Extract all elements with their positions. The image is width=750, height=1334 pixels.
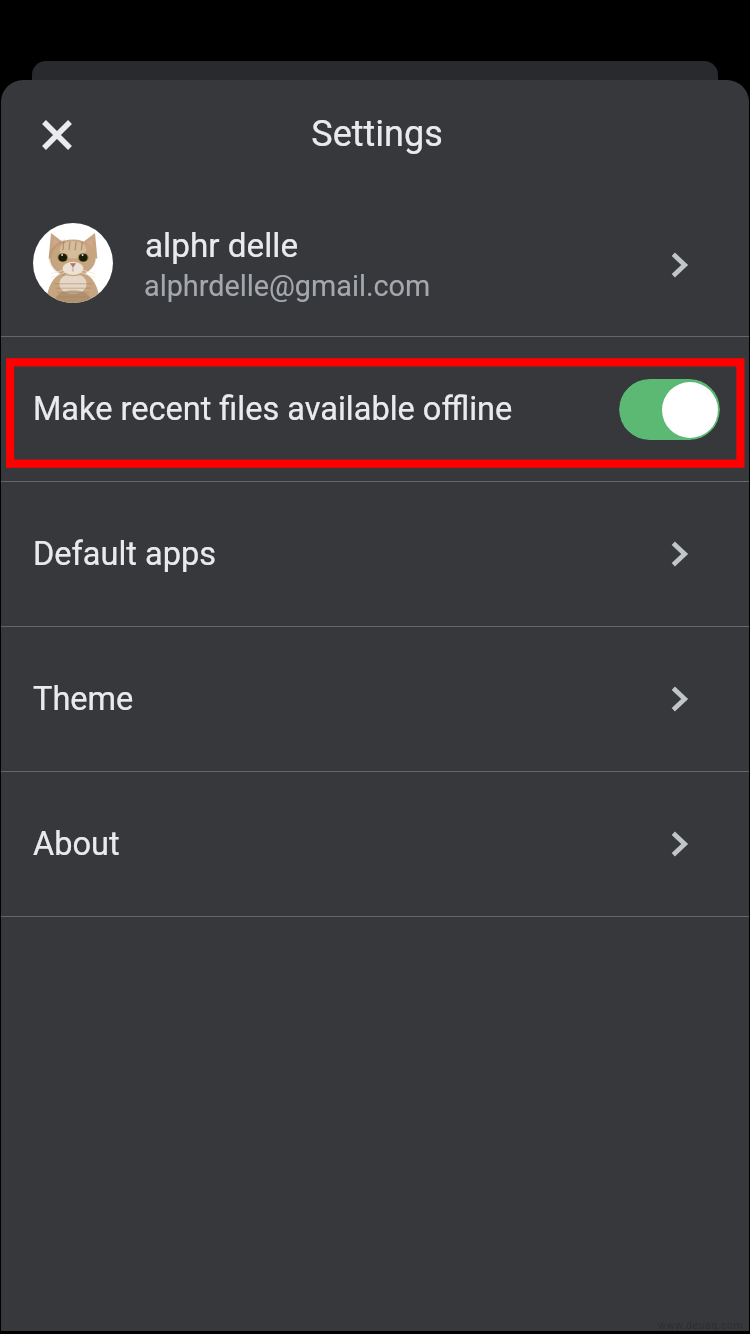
button[interactable]: Theme xyxy=(1,626,749,771)
staticText: Theme xyxy=(33,680,134,718)
staticText: alphr delle xyxy=(145,226,299,265)
button[interactable]: Default apps xyxy=(1,481,749,626)
button[interactable]: Make recent files available offline togg… xyxy=(619,379,720,440)
button[interactable]: Close xyxy=(25,103,89,167)
staticText: alphrdelle@gmail.com xyxy=(144,269,431,303)
staticText: About xyxy=(33,825,120,863)
staticText: www.deuaq.com xyxy=(658,1319,744,1331)
button[interactable]: Make recent files available offline xyxy=(1,336,749,481)
button[interactable]: About xyxy=(1,771,749,916)
button[interactable]: alphr delle xyxy=(1,190,749,336)
staticText: Make recent files available offline xyxy=(33,390,513,428)
staticText: Settings xyxy=(311,113,443,155)
staticText: Default apps xyxy=(33,535,217,573)
